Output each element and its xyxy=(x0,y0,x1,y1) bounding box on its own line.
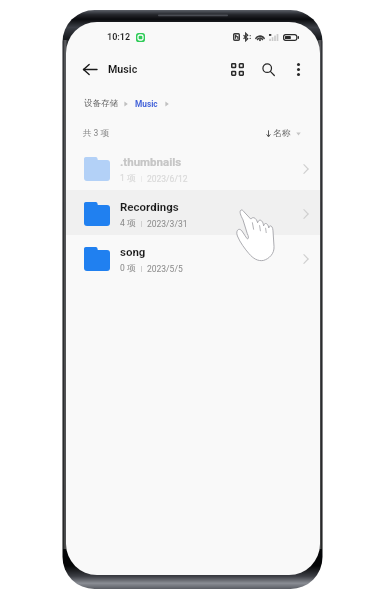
staticText: 2023/6/12 xyxy=(147,174,188,184)
staticText: .thumbnails xyxy=(120,155,182,168)
staticText: 0 项 xyxy=(120,263,136,274)
staticText: 2023/5/5 xyxy=(147,264,183,274)
button[interactable]: .thumbnails xyxy=(66,145,320,190)
staticText: Recordings xyxy=(120,200,179,213)
staticText: 2023/3/31 xyxy=(147,219,188,229)
button[interactable]: Grid view xyxy=(225,57,249,81)
staticText: 共 3 项 xyxy=(83,128,109,139)
button[interactable]: 名称 xyxy=(266,128,301,139)
button[interactable]: More options xyxy=(287,58,309,80)
staticText: Music xyxy=(108,63,138,76)
staticText: 1 项 xyxy=(120,173,136,184)
button[interactable]: song xyxy=(66,235,320,280)
staticText: song xyxy=(120,245,146,258)
staticText: 名称 xyxy=(273,128,291,139)
button[interactable]: Search xyxy=(256,57,280,81)
staticText: 4 项 xyxy=(120,218,136,229)
staticText: 10:12 xyxy=(107,32,131,43)
button[interactable]: Back xyxy=(78,57,102,81)
button[interactable]: Music xyxy=(135,99,158,109)
button[interactable]: Recordings xyxy=(66,190,320,235)
button[interactable]: 设备存储 xyxy=(84,98,118,109)
